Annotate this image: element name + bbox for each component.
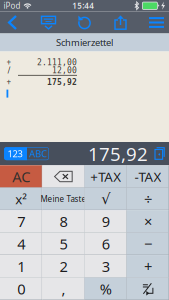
button[interactable]: ABC xyxy=(27,147,49,160)
button[interactable]: -TAX xyxy=(127,165,169,188)
button[interactable]: AC xyxy=(0,165,42,188)
staticText: -TAX xyxy=(134,168,161,185)
staticText: 2.111,00 xyxy=(37,58,77,67)
staticText: ABC xyxy=(29,147,47,160)
button[interactable]: − xyxy=(127,233,169,255)
staticText: − xyxy=(144,234,152,254)
staticText: 12,00 xyxy=(52,66,77,75)
staticText: × xyxy=(144,212,152,231)
button[interactable]: × xyxy=(127,210,169,233)
staticText: 175,92 xyxy=(47,78,77,87)
staticText: iPod xyxy=(3,0,20,11)
staticText: 6 xyxy=(102,234,110,254)
button[interactable]: 1 xyxy=(0,255,42,277)
staticText: √ xyxy=(101,191,110,207)
button[interactable]: 8 xyxy=(42,210,84,233)
button[interactable]: 6 xyxy=(84,233,127,255)
staticText: 7 xyxy=(17,212,25,231)
staticText: + xyxy=(6,77,11,87)
button[interactable]: 123 xyxy=(4,147,26,160)
button[interactable] xyxy=(127,278,169,300)
staticText: 9 xyxy=(102,212,110,231)
button[interactable]: +TAX xyxy=(84,165,127,188)
staticText: 15:44 xyxy=(72,0,94,11)
staticText: / xyxy=(7,65,10,76)
staticText: 5 xyxy=(59,234,67,254)
button[interactable]: 5 xyxy=(42,233,84,255)
staticText: +TAX xyxy=(90,168,121,185)
staticText: 0 xyxy=(17,279,25,298)
button[interactable]: 0 xyxy=(0,278,42,300)
staticText: 1 xyxy=(17,257,25,276)
staticText: ÷ xyxy=(144,189,152,209)
staticText: Schmierzettel xyxy=(56,36,113,49)
button[interactable]: Undo xyxy=(70,12,98,33)
button[interactable]: Back xyxy=(0,12,26,33)
button[interactable]: 3 xyxy=(84,255,127,277)
button[interactable]: + xyxy=(127,255,169,277)
button[interactable]: , xyxy=(42,278,84,300)
staticText: 3 xyxy=(102,257,110,276)
staticText: AC xyxy=(12,167,30,186)
button[interactable]: Menu xyxy=(142,12,169,33)
staticText: x² xyxy=(15,190,27,208)
button[interactable]: Hide keyboard xyxy=(34,12,62,33)
staticText: 2 xyxy=(59,257,67,276)
button[interactable]: 4 xyxy=(0,233,42,255)
staticText: 8 xyxy=(59,212,67,231)
staticText: + xyxy=(6,57,11,68)
staticText: % xyxy=(100,279,112,298)
staticText: 123 xyxy=(7,147,22,160)
button[interactable]: √ xyxy=(84,188,127,210)
staticText: , xyxy=(61,279,65,298)
button[interactable]: 7 xyxy=(0,210,42,233)
staticText: 4 xyxy=(17,234,25,254)
staticText: + xyxy=(144,257,152,276)
button[interactable]: Meine Taste xyxy=(42,188,84,210)
button[interactable]: 9 xyxy=(84,210,127,233)
button[interactable]: 2 xyxy=(42,255,84,277)
button[interactable] xyxy=(42,165,84,188)
button[interactable]: Insert result xyxy=(153,147,165,160)
staticText: Meine Taste xyxy=(40,194,86,204)
button[interactable]: x² xyxy=(0,188,42,210)
button[interactable]: Share xyxy=(106,12,134,33)
button[interactable]: % xyxy=(84,278,127,300)
button[interactable]: ÷ xyxy=(127,188,169,210)
staticText: 175,92 xyxy=(88,141,148,166)
